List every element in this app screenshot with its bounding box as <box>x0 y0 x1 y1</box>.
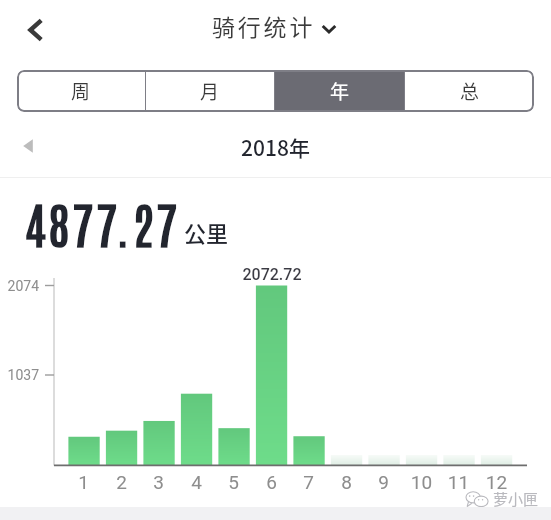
staticText: 6 <box>256 471 287 493</box>
button[interactable]: Back <box>14 9 56 51</box>
staticText: 2072.72 <box>232 265 312 284</box>
staticText: 2074 <box>0 278 39 294</box>
staticText: 2 <box>106 471 137 493</box>
staticText: 年 <box>330 77 350 105</box>
button[interactable]: 骑行统计 <box>206 8 344 50</box>
staticText: 3 <box>143 471 174 493</box>
staticText: 8 <box>331 471 362 493</box>
button[interactable]: 年 <box>275 70 404 112</box>
button[interactable]: 周 <box>17 70 145 112</box>
staticText: 总 <box>460 77 480 105</box>
staticText: 骑行统计 <box>212 9 316 42</box>
staticText: 1037 <box>0 367 39 383</box>
staticText: 萝小匣 <box>493 488 539 510</box>
staticText: 2018年 <box>241 132 310 162</box>
staticText: 月 <box>200 77 220 105</box>
staticText: 5 <box>218 471 249 493</box>
staticText: 4877.27 <box>25 190 181 253</box>
button[interactable]: 总 <box>405 70 534 112</box>
staticText: 1 <box>68 471 99 493</box>
staticText: 10 <box>406 471 437 493</box>
staticText: 12 <box>481 471 512 493</box>
staticText: 4 <box>181 471 212 493</box>
staticText: 公里 <box>184 216 229 248</box>
staticText: 11 <box>443 471 474 493</box>
staticText: 9 <box>368 471 399 493</box>
staticText: 7 <box>293 471 324 493</box>
staticText: 周 <box>71 77 91 105</box>
button[interactable]: Previous year <box>14 132 42 160</box>
button[interactable]: 月 <box>146 70 274 112</box>
